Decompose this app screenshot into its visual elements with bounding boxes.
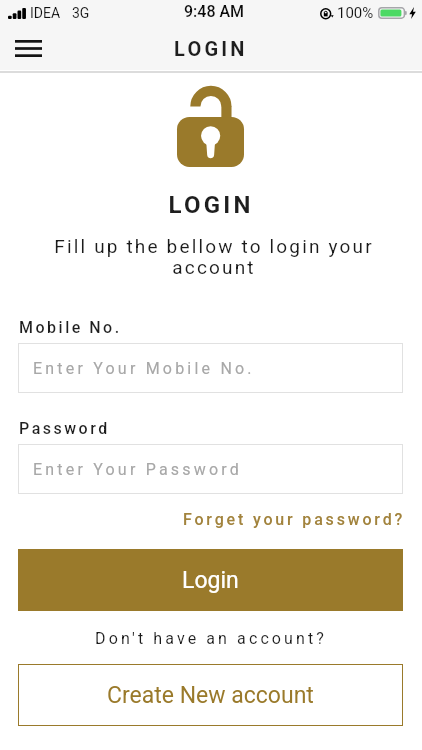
staticText: Forget your password? bbox=[183, 510, 406, 529]
button[interactable]: Enter Your Password bbox=[18, 444, 403, 494]
staticText: Enter Your Password bbox=[33, 460, 242, 479]
staticText: LOGIN bbox=[0, 191, 422, 219]
button[interactable]: Login bbox=[18, 549, 403, 611]
button[interactable]: Create New account bbox=[18, 664, 403, 726]
staticText: Create New account bbox=[107, 682, 314, 709]
staticText: Password bbox=[19, 419, 110, 438]
staticText: Don't have an account? bbox=[0, 629, 422, 648]
staticText: Enter Your Mobile No. bbox=[33, 359, 255, 378]
staticText: Fill up the bellow to login your account bbox=[43, 235, 385, 278]
staticText: IDEA bbox=[30, 5, 61, 21]
button[interactable]: Enter Your Mobile No. bbox=[18, 343, 403, 393]
staticText: 3G bbox=[72, 5, 90, 21]
staticText: 9:48 AM bbox=[184, 2, 245, 21]
staticText: 100% bbox=[337, 4, 374, 22]
button[interactable]: Open navigation menu bbox=[0, 27, 57, 72]
button[interactable]: Forget your password? bbox=[0, 510, 406, 529]
staticText: LOGIN bbox=[174, 37, 248, 60]
staticText: Login bbox=[182, 567, 239, 594]
staticText: Mobile No. bbox=[19, 318, 122, 337]
